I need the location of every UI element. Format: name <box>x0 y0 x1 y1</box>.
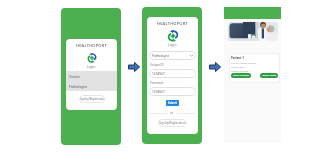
staticText: or <box>170 111 174 115</box>
staticText: HEALTHOPORT <box>76 43 107 48</box>
staticText: SignUp/Registration <box>80 97 105 101</box>
button[interactable]: SignUp/Registration <box>79 95 105 103</box>
button[interactable]: Upload Report <box>260 73 278 78</box>
staticText: HEALTHOPORT <box>157 21 188 26</box>
button[interactable]: Check All Report <box>231 73 251 78</box>
staticText: Check All Report <box>233 74 250 77</box>
staticText: Patient 1 <box>231 56 244 60</box>
other: Next step <box>128 62 140 72</box>
button[interactable]: Pathologist <box>69 81 117 91</box>
staticText: Login <box>168 43 177 47</box>
button[interactable]: Doctor <box>69 71 117 81</box>
staticText: Submit <box>168 101 177 105</box>
staticText: Patient number 1 <box>231 69 251 72</box>
button[interactable]: 1234567 <box>152 69 193 78</box>
staticText: Doctor <box>69 74 80 79</box>
staticText: Pathologist <box>69 84 88 89</box>
other: Next step <box>209 62 221 72</box>
staticText: SignUp/Registration <box>159 121 186 125</box>
button[interactable]: SignUp/Registration <box>158 119 187 127</box>
button[interactable]: Pathologist <box>152 51 193 60</box>
staticText: Patient age <box>231 65 244 68</box>
staticText: Patient Mobile number <box>231 61 257 64</box>
staticText: Password <box>150 81 164 85</box>
staticText: Login <box>87 65 96 69</box>
staticText: Unique ID <box>150 63 164 67</box>
button[interactable]: Submit <box>166 100 179 106</box>
staticText: 1234567 <box>152 90 165 94</box>
staticText: Pathologist <box>152 54 169 58</box>
button[interactable]: 1234567 <box>152 87 193 96</box>
staticText: Upload Report <box>262 74 277 77</box>
staticText: 1234567 <box>152 72 165 76</box>
